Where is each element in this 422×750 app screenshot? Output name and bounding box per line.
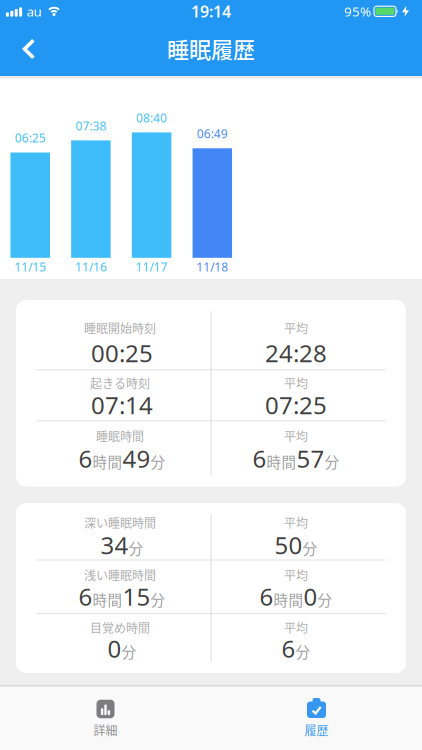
staticText: 08:40 xyxy=(136,110,167,126)
staticText: 07:14 xyxy=(91,389,153,421)
staticText: 睡眠開始時刻 xyxy=(84,319,156,337)
staticText: 24:28 xyxy=(265,337,327,369)
staticText: 目覚め時間 xyxy=(90,619,150,636)
staticText: 11/17 xyxy=(136,259,168,275)
staticText: 6 xyxy=(281,633,295,664)
staticText: 0 xyxy=(303,581,317,612)
staticText: 平均 xyxy=(284,514,308,531)
staticText: 95% xyxy=(344,2,371,20)
staticText: 平均 xyxy=(284,566,308,584)
staticText: 00:25 xyxy=(91,337,153,369)
staticText: 履歴 xyxy=(304,721,328,739)
staticText: 07:25 xyxy=(265,389,327,421)
staticText: 34 xyxy=(100,529,128,561)
staticText: 6 xyxy=(78,443,92,474)
button[interactable]: 詳細 xyxy=(0,685,211,750)
staticText: 平均 xyxy=(284,619,308,636)
staticText: 49 xyxy=(122,443,150,474)
staticText: 時間 xyxy=(92,451,122,472)
staticText: 6 xyxy=(259,581,273,612)
staticText: 平均 xyxy=(284,374,308,392)
staticText: 06:49 xyxy=(197,126,228,142)
staticText: 分 xyxy=(324,451,339,472)
staticText: 11/15 xyxy=(14,259,46,275)
staticText: 19:14 xyxy=(191,1,231,22)
staticText: 11/18 xyxy=(196,259,228,275)
staticText: 分 xyxy=(150,589,165,610)
staticText: 睡眠時間 xyxy=(96,427,144,445)
button[interactable]: 履歴 xyxy=(211,685,422,750)
staticText: 分 xyxy=(317,589,332,610)
staticText: 睡眠履歴 xyxy=(167,33,255,64)
staticText: 6 xyxy=(78,581,92,612)
staticText: au xyxy=(26,2,41,20)
staticText: 詳細 xyxy=(93,721,117,739)
staticText: 平均 xyxy=(284,319,308,337)
staticText: 分 xyxy=(295,641,310,662)
staticText: 0 xyxy=(107,633,121,664)
staticText: 分 xyxy=(128,537,143,558)
staticText: 分 xyxy=(121,641,136,662)
staticText: 11/16 xyxy=(75,259,107,275)
staticText: 6 xyxy=(252,443,266,474)
staticText: 15 xyxy=(122,581,150,612)
staticText: 50 xyxy=(274,529,302,561)
staticText: 起きる時刻 xyxy=(90,374,150,392)
staticText: 57 xyxy=(296,443,324,474)
staticText: 時間 xyxy=(273,589,303,610)
staticText: 平均 xyxy=(284,427,308,445)
staticText: 分 xyxy=(302,537,317,558)
button[interactable]: Back xyxy=(7,27,51,71)
staticText: 浅い睡眠時間 xyxy=(84,566,156,584)
staticText: 分 xyxy=(150,451,165,472)
staticText: 深い睡眠時間 xyxy=(84,514,156,531)
staticText: 06:25 xyxy=(15,130,46,146)
staticText: 時間 xyxy=(266,451,296,472)
staticText: 時間 xyxy=(92,589,122,610)
staticText: 07:38 xyxy=(75,118,106,134)
